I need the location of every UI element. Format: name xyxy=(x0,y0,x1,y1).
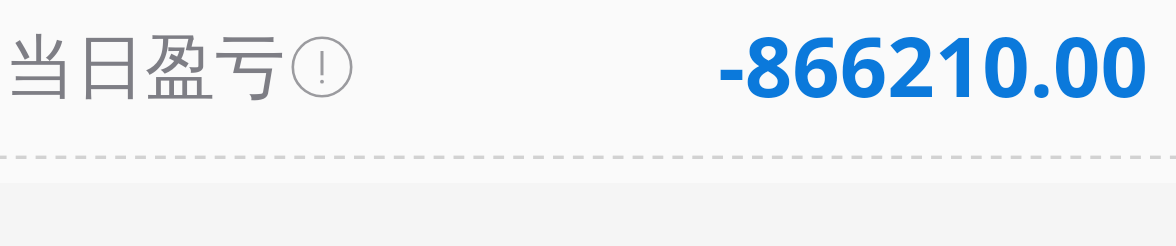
button[interactable]: 当日盈亏 xyxy=(5,24,354,112)
staticText: 当日盈亏 xyxy=(5,24,285,112)
button[interactable]: 当日盈亏 xyxy=(0,0,1176,183)
staticText: -866210.00 xyxy=(0,8,1148,121)
button[interactable]: 当日盈亏说明 xyxy=(290,36,354,100)
